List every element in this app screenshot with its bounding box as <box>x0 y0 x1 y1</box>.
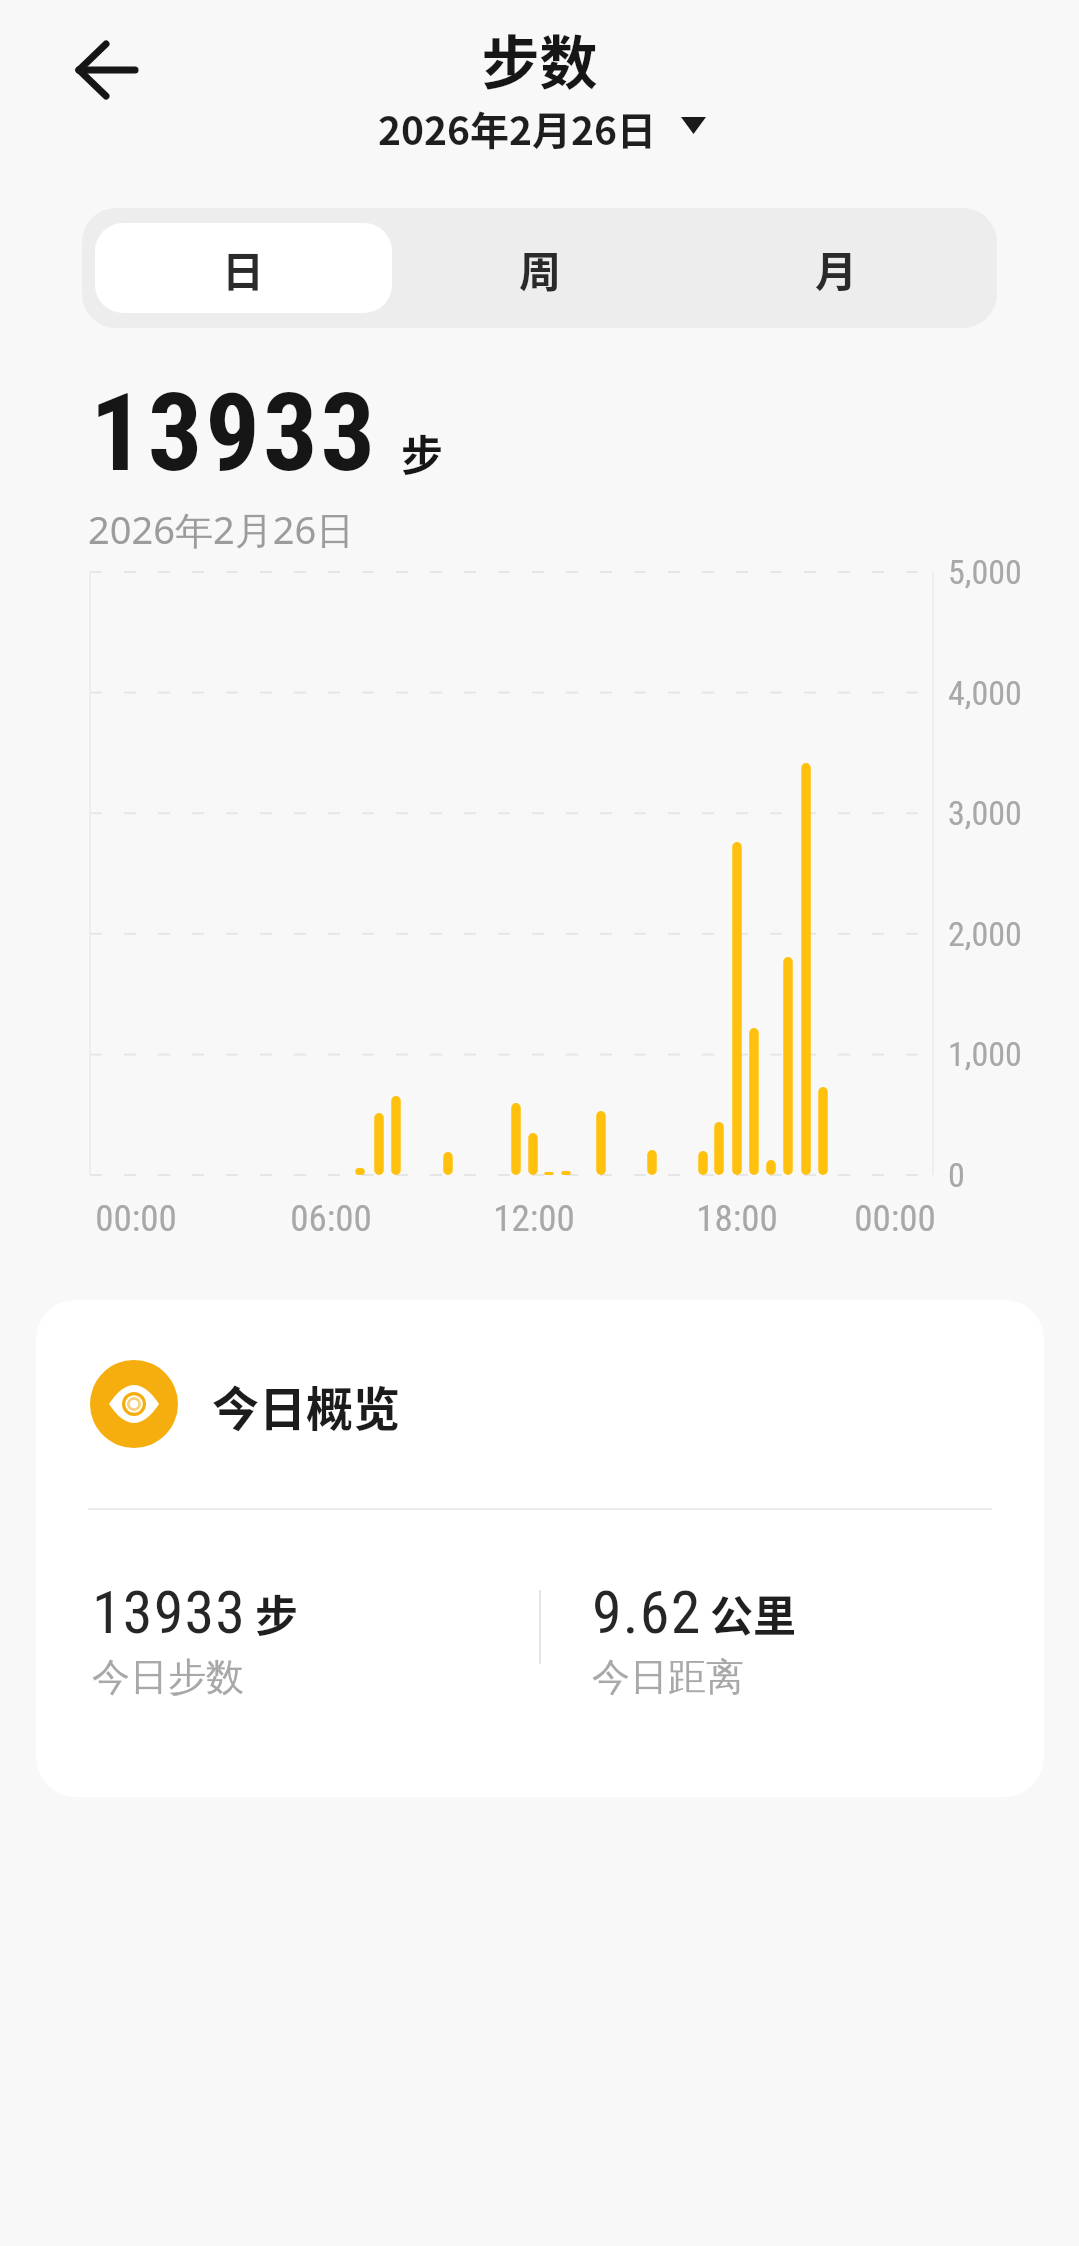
staticText: 00:00 <box>95 1197 177 1240</box>
staticText: 9.62 <box>592 1577 702 1647</box>
staticText: 2026年2月26日 <box>378 100 657 150</box>
staticText: 步 <box>255 1582 298 1644</box>
staticText: 2026年2月26日 <box>88 503 355 555</box>
staticText: 1,000 <box>948 1034 1022 1074</box>
staticText: 公里 <box>710 1582 796 1644</box>
staticText: 0 <box>948 1155 965 1195</box>
staticText: 00:00 <box>854 1197 936 1240</box>
staticText: 今日距离 <box>592 1653 744 1701</box>
staticText: 月 <box>815 238 858 299</box>
staticText: 2,000 <box>948 914 1022 954</box>
staticText: 18:00 <box>696 1197 778 1240</box>
button[interactable]: 周 <box>392 223 688 313</box>
staticText: 3,000 <box>948 793 1022 833</box>
button[interactable]: 2026年2月26日 <box>378 100 706 150</box>
button[interactable] <box>62 34 152 106</box>
staticText: 今日概览 <box>212 1371 400 1439</box>
staticText: 5,000 <box>948 552 1022 592</box>
staticText: 06:00 <box>290 1197 372 1240</box>
staticText: 今日步数 <box>92 1653 244 1701</box>
staticText: 日 <box>222 238 265 299</box>
staticText: 4,000 <box>948 673 1022 713</box>
staticText: 周 <box>519 238 562 299</box>
staticText: 13933 <box>90 370 379 497</box>
staticText: 步数 <box>481 17 598 101</box>
staticText: 步 <box>401 422 444 483</box>
button[interactable]: 日 <box>95 223 392 313</box>
staticText: 12:00 <box>493 1197 575 1240</box>
staticText: 13933 <box>92 1577 247 1647</box>
button[interactable]: 月 <box>688 223 984 313</box>
